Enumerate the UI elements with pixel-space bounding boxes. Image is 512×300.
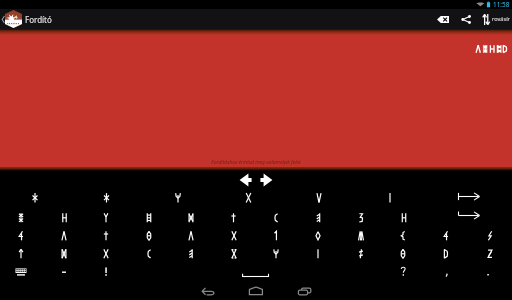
- button[interactable]: Key: [42, 243, 84, 261]
- button[interactable]: Key: [297, 207, 340, 225]
- button[interactable]: Key: [383, 243, 426, 261]
- staticText: rovásír: [492, 15, 510, 23]
- button[interactable]: Key: [297, 243, 340, 261]
- button[interactable]: Key: [383, 189, 426, 207]
- button[interactable]: rovásír: [482, 9, 510, 29]
- button[interactable]: Key: [254, 243, 297, 261]
- button[interactable]: Key: [168, 189, 211, 207]
- button[interactable]: Key: [0, 261, 42, 278]
- button[interactable]: Key: [126, 243, 168, 261]
- button[interactable]: Key: [469, 243, 512, 261]
- button[interactable]: Key: [426, 189, 469, 207]
- button[interactable]: Key: [469, 189, 512, 207]
- button[interactable]: Key: [469, 207, 512, 225]
- button[interactable]: Key: [383, 207, 426, 225]
- button[interactable]: Key: [84, 189, 126, 207]
- button[interactable]: Key: [0, 189, 42, 207]
- button[interactable]: Key: [211, 189, 254, 207]
- button[interactable]: Key: [211, 243, 254, 261]
- button[interactable]: Key: [84, 243, 126, 261]
- button[interactable]: Key: [42, 207, 84, 225]
- button[interactable]: Key: [426, 225, 469, 243]
- button[interactable]: Key: [42, 261, 84, 278]
- button[interactable]: Key: [426, 207, 469, 225]
- button[interactable]: Key: [168, 207, 211, 225]
- button[interactable]: Key: [84, 261, 126, 278]
- button[interactable]: Key: [254, 261, 297, 278]
- button[interactable]: Key: [340, 243, 383, 261]
- button[interactable]: Key: [383, 261, 426, 278]
- button[interactable]: Key: [211, 225, 254, 243]
- button[interactable]: Key: [297, 225, 340, 243]
- button[interactable]: Key: [211, 207, 254, 225]
- button[interactable]: Key: [84, 207, 126, 225]
- button[interactable]: Home: [232, 278, 280, 300]
- button[interactable]: Key: [426, 261, 469, 278]
- staticText: Fordító: [25, 14, 52, 25]
- button[interactable]: Key: [126, 207, 168, 225]
- button[interactable]: Key: [211, 261, 254, 278]
- button[interactable]: Backspace: [430, 9, 455, 29]
- button[interactable]: Key: [168, 225, 211, 243]
- button[interactable]: Key: [469, 261, 512, 278]
- button[interactable]: Key: [254, 207, 297, 225]
- button[interactable]: Key: [84, 225, 126, 243]
- button[interactable]: Back: [184, 278, 232, 300]
- button[interactable]: Recent apps: [280, 278, 328, 300]
- button[interactable]: Key: [0, 243, 42, 261]
- button[interactable]: Key: [383, 225, 426, 243]
- button[interactable]: Key: [126, 225, 168, 243]
- button[interactable]: Key: [0, 207, 42, 225]
- button[interactable]: Key: [297, 189, 340, 207]
- button[interactable]: Key: [168, 243, 211, 261]
- button[interactable]: Back: [0, 9, 5, 29]
- button[interactable]: Key: [42, 225, 84, 243]
- button[interactable]: Key: [469, 225, 512, 243]
- staticText: 11:58: [493, 0, 510, 9]
- staticText: Fordításhoz érintsd meg valamelyik felet: [211, 159, 301, 166]
- button[interactable]: Key: [340, 225, 383, 243]
- button[interactable]: Share: [454, 9, 478, 29]
- button[interactable]: Key: [426, 243, 469, 261]
- button[interactable]: Key: [254, 225, 297, 243]
- button[interactable]: Key: [340, 207, 383, 225]
- button[interactable]: Key: [0, 225, 42, 243]
